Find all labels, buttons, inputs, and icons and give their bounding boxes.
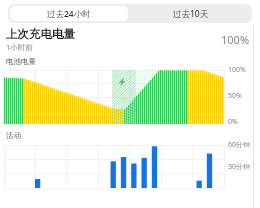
staticText: 1小时前 [6,42,33,52]
button[interactable] [0,142,260,188]
staticText: 100% [228,65,246,75]
staticText: 过去10天 [173,8,209,20]
button[interactable]: 过去24小时 [10,6,128,21]
staticText: 过去24小时 [47,8,91,20]
staticText: 电池电量 [6,57,36,66]
staticText: 50% [228,91,242,101]
staticText: 100% [221,32,250,47]
button[interactable]: 上次充电电量 [6,27,250,52]
staticText: 上次充电电量 [6,27,75,41]
button[interactable] [0,68,260,128]
staticText: 活动 [6,131,21,140]
button[interactable]: 过去10天 [130,4,252,23]
staticText: 30分钟 [228,162,251,172]
staticText: 0% [228,117,238,127]
staticText: 60分钟 [228,140,251,150]
